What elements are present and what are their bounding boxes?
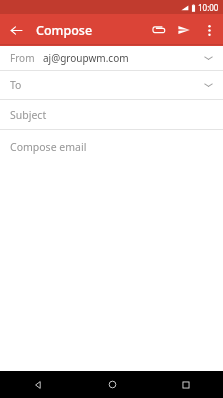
button[interactable]: Subject	[0, 100, 223, 129]
staticText: Compose	[36, 22, 93, 39]
staticText: From	[10, 51, 35, 65]
button[interactable]: Recent apps	[149, 371, 223, 398]
button[interactable]: From	[0, 46, 223, 70]
staticText: To	[10, 78, 22, 92]
button[interactable]: Attach file	[145, 17, 171, 43]
button[interactable]: More options	[197, 18, 221, 42]
button[interactable]: Back	[0, 14, 32, 46]
button[interactable]: To	[0, 71, 223, 99]
staticText: Subject	[10, 108, 47, 122]
button[interactable]: Back	[0, 371, 75, 398]
button[interactable]: Home	[75, 371, 149, 398]
staticText: Compose email	[10, 140, 87, 154]
button[interactable]: Send	[171, 17, 197, 43]
staticText: 10:00	[198, 2, 219, 13]
staticText: aj@groupwm.com	[43, 51, 129, 65]
